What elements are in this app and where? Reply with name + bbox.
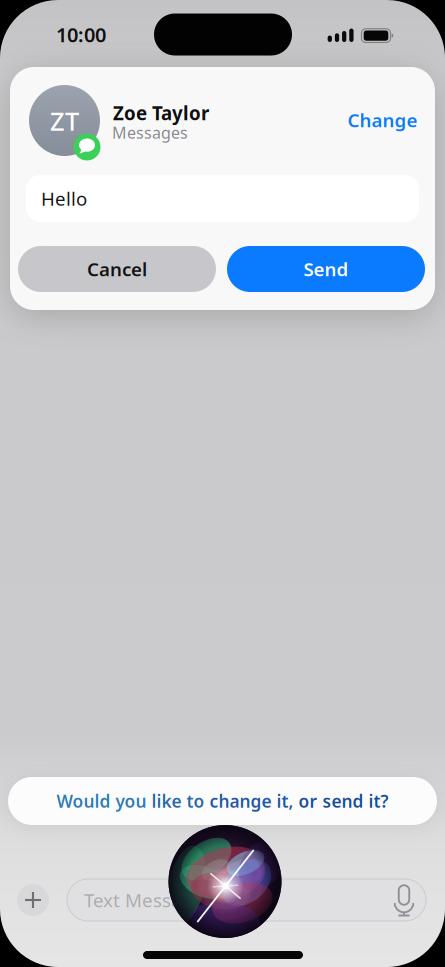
staticText: Would you	[56, 789, 151, 812]
button[interactable]: Add attachment	[17, 884, 49, 916]
staticText: or send it?	[298, 789, 388, 812]
staticText: ZT	[50, 104, 79, 138]
staticText: Zoe Taylor	[113, 101, 209, 125]
staticText: Hello	[41, 186, 87, 211]
staticText: Messages	[112, 122, 188, 143]
staticText: like to	[151, 789, 209, 812]
button[interactable]: Text Message	[67, 879, 426, 921]
button[interactable]: Send	[227, 246, 425, 292]
staticText: Change	[347, 108, 417, 132]
button[interactable]: Cancel	[18, 246, 216, 292]
staticText: Text Message	[84, 888, 203, 912]
staticText: Cancel	[87, 257, 147, 281]
button[interactable]: Dictate	[391, 883, 417, 919]
staticText: 10:00	[56, 21, 106, 48]
button[interactable]: Siri	[168, 825, 281, 938]
staticText: Send	[303, 257, 348, 281]
button[interactable]: Hello	[26, 175, 419, 222]
button[interactable]: Change	[297, 102, 417, 138]
staticText: change it,	[209, 789, 298, 812]
